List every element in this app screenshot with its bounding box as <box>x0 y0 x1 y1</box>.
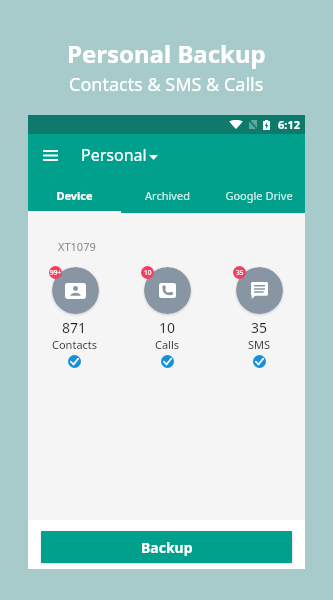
staticText: Backup <box>141 538 193 557</box>
staticText: Device <box>56 188 93 203</box>
staticText: 6:12 <box>278 117 300 132</box>
button[interactable]: Google Drive <box>213 175 305 213</box>
staticText: 871 <box>62 318 87 337</box>
staticText: Contacts & SMS & Calls <box>69 72 264 97</box>
staticText: 35 <box>236 268 244 277</box>
button[interactable]: 99+ <box>28 261 121 368</box>
staticText: 35 <box>251 318 268 337</box>
staticText: 10 <box>159 318 176 337</box>
button[interactable]: Backup <box>41 531 292 563</box>
staticText: Personal <box>81 144 147 166</box>
staticText: SMS <box>248 337 271 352</box>
button[interactable]: Archived <box>121 175 213 213</box>
staticText: Google Drive <box>225 188 293 203</box>
button[interactable]: Device <box>28 175 121 213</box>
button[interactable]: 10 <box>121 261 213 368</box>
button[interactable]: 35 <box>213 261 305 368</box>
button[interactable]: Open navigation drawer <box>35 140 65 170</box>
staticText: Archived <box>145 188 190 203</box>
staticText: 10 <box>144 268 152 277</box>
staticText: 99+ <box>50 268 62 277</box>
staticText: XT1079 <box>58 239 96 254</box>
staticText: Contacts <box>52 337 98 352</box>
button[interactable]: Personal <box>81 144 158 166</box>
staticText: Personal Backup <box>67 37 266 70</box>
staticText: Calls <box>155 337 180 352</box>
